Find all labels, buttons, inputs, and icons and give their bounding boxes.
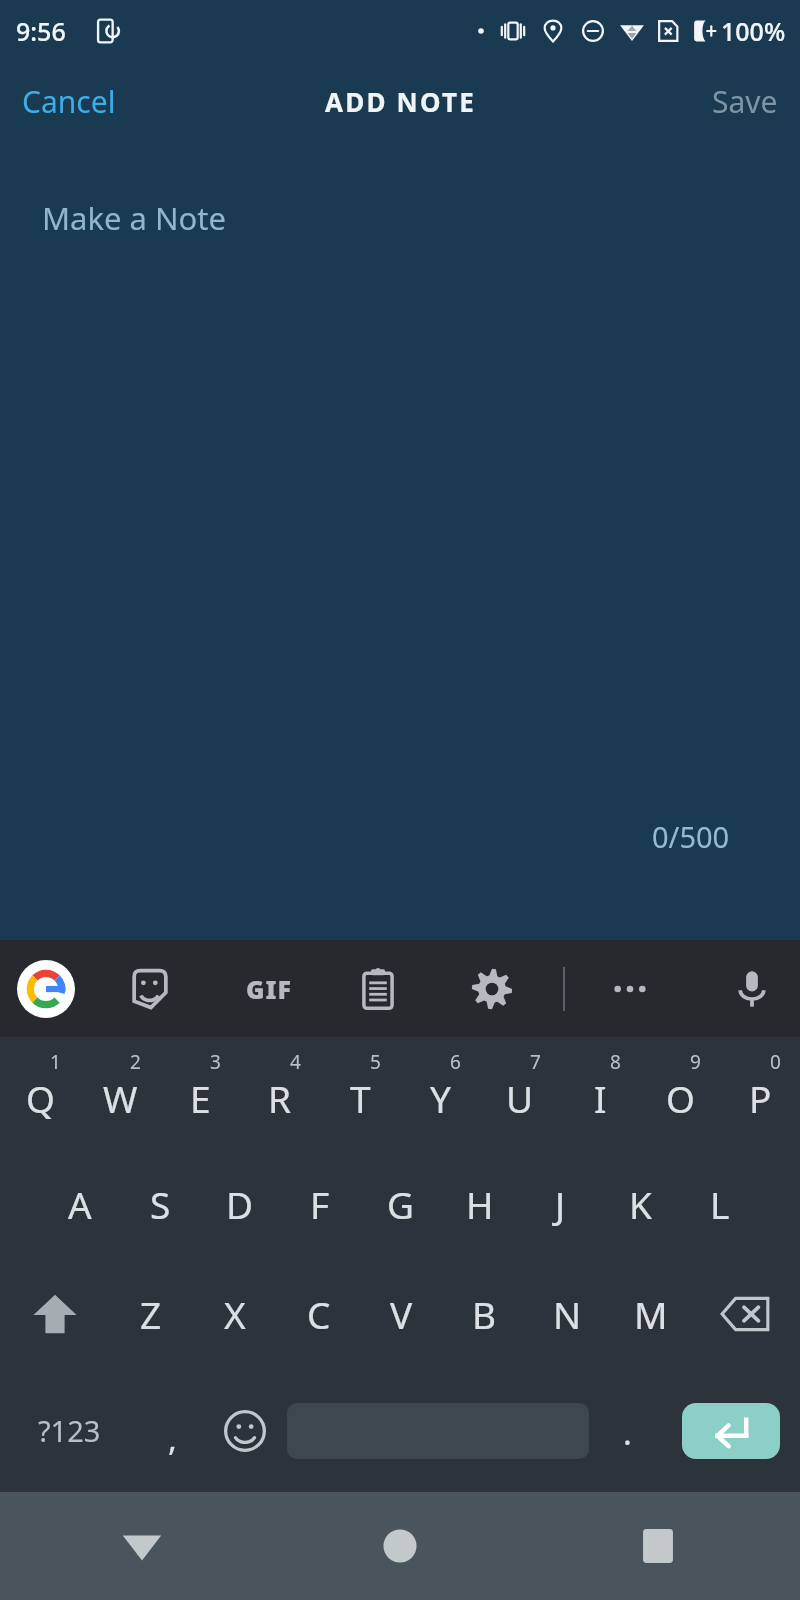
button[interactable]: Emoji [207,1369,282,1492]
button[interactable]: GIF [238,958,300,1020]
staticText: 7 [530,1049,541,1075]
button[interactable]: M [609,1259,692,1369]
button[interactable]: 2 [80,1037,160,1149]
staticText: 0/500 [652,817,730,856]
button[interactable]: , [138,1369,207,1492]
staticText: X [224,1289,246,1339]
staticText: Cancel [22,81,116,122]
button[interactable]: 8 [560,1037,640,1149]
button[interactable]: 1 [0,1037,80,1149]
staticText: K [629,1179,652,1229]
staticText: J [555,1179,566,1229]
staticText: V [390,1289,413,1339]
staticText: 9 [690,1049,701,1075]
staticText: O [666,1073,695,1123]
staticText: 0 [770,1049,781,1075]
button[interactable]: L [680,1149,760,1259]
button[interactable]: B [443,1259,526,1369]
staticText: P [749,1073,772,1123]
button[interactable]: Recents [616,1504,700,1588]
button[interactable]: . [593,1369,662,1492]
button[interactable]: Clipboard [352,963,404,1015]
staticText: . [623,1410,632,1455]
staticText: R [268,1073,292,1123]
button[interactable] [282,1369,593,1492]
staticText: F [310,1179,330,1229]
staticText: B [472,1289,497,1339]
button[interactable]: F [280,1149,360,1259]
button[interactable]: Make a Note [0,140,800,940]
button[interactable]: K [600,1149,680,1259]
button[interactable]: Enter [662,1369,800,1492]
staticText: U [506,1073,534,1123]
button[interactable]: X [193,1259,277,1369]
staticText: N [553,1289,582,1339]
staticText: 9:56 [16,14,66,48]
staticText: W [103,1073,138,1123]
staticText: S [150,1179,171,1229]
button[interactable]: 9 [640,1037,720,1149]
button[interactable]: Save [690,71,800,132]
staticText: 3 [210,1049,221,1075]
button[interactable]: D [200,1149,280,1259]
staticText: A [68,1179,92,1229]
staticText: GIF [246,972,292,1006]
button[interactable]: Cancel [0,71,138,132]
staticText: Make a Note [42,197,227,239]
button[interactable]: ?123 [0,1369,138,1492]
button[interactable]: 6 [400,1037,480,1149]
staticText: 5 [370,1049,381,1075]
button[interactable]: Stickers [124,963,176,1015]
button[interactable]: S [120,1149,200,1259]
staticText: ?123 [38,1411,101,1450]
staticText: 100% [721,14,786,48]
staticText: D [226,1179,254,1229]
staticText: Z [140,1289,162,1339]
button[interactable]: Z [109,1259,193,1369]
button[interactable]: More options [604,963,656,1015]
staticText: , [168,1416,177,1461]
staticText: L [710,1179,730,1229]
staticText: Y [430,1073,451,1123]
staticText: 4 [290,1049,301,1075]
button[interactable]: 0 [720,1037,800,1149]
staticText: T [350,1073,371,1123]
staticText: H [466,1179,494,1229]
button[interactable]: Backspace [692,1259,800,1369]
staticText: 2 [130,1049,141,1075]
button[interactable]: Google [17,960,75,1018]
staticText: E [190,1073,211,1123]
staticText: I [594,1073,607,1123]
staticText: G [387,1179,414,1229]
staticText: M [634,1289,668,1339]
staticText: ADD NOTE [325,84,476,119]
button[interactable]: H [440,1149,520,1259]
button[interactable]: G [360,1149,440,1259]
staticText: Save [712,81,778,122]
button[interactable]: Home [358,1504,442,1588]
button[interactable]: A [40,1149,120,1259]
button[interactable]: 3 [160,1037,240,1149]
button[interactable]: Shift [0,1259,109,1369]
button[interactable]: V [360,1259,443,1369]
button[interactable]: 4 [240,1037,320,1149]
staticText: Q [26,1073,55,1123]
button[interactable]: C [277,1259,360,1369]
button[interactable]: Back [100,1504,184,1588]
staticText: 6 [450,1049,461,1075]
button[interactable]: Settings [466,963,518,1015]
button[interactable]: J [520,1149,600,1259]
staticText: 8 [610,1049,621,1075]
button[interactable]: Voice input [726,963,778,1015]
button[interactable]: N [526,1259,609,1369]
staticText: C [307,1289,331,1339]
button[interactable]: 7 [480,1037,560,1149]
staticText: 1 [50,1049,61,1075]
button[interactable]: 5 [320,1037,400,1149]
